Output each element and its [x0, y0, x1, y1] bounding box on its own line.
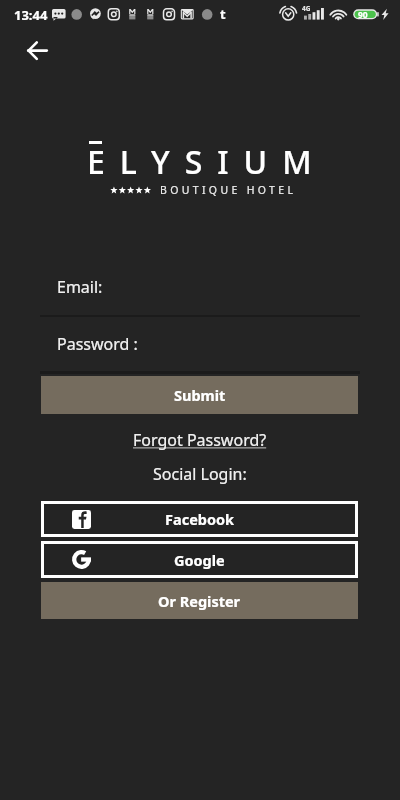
- staticText: t: [220, 5, 226, 23]
- staticText: ELYSIUM: [87, 140, 327, 184]
- button[interactable]: Google: [41, 541, 358, 578]
- button[interactable]: Submit: [41, 376, 358, 414]
- staticText: Facebook: [165, 509, 235, 529]
- staticText: Google: [174, 550, 225, 570]
- staticText: Password :: [57, 333, 138, 355]
- button[interactable]: Email:: [40, 268, 360, 306]
- button[interactable]: Back: [15, 33, 49, 67]
- staticText: Submit: [174, 385, 226, 405]
- button[interactable]: Or Register: [41, 582, 358, 619]
- button[interactable]: Forgot Password?: [131, 429, 269, 451]
- staticText: BOUTIQUE HOTEL: [160, 183, 297, 197]
- staticText: Email:: [57, 276, 103, 298]
- staticText: Social Login:: [153, 463, 247, 485]
- staticText: 13:44: [14, 6, 48, 24]
- button[interactable]: Password :: [40, 325, 360, 363]
- staticText: Or Register: [158, 591, 241, 611]
- staticText: 90: [358, 9, 368, 21]
- staticText: 4G: [302, 4, 311, 13]
- button[interactable]: Facebook: [41, 501, 358, 537]
